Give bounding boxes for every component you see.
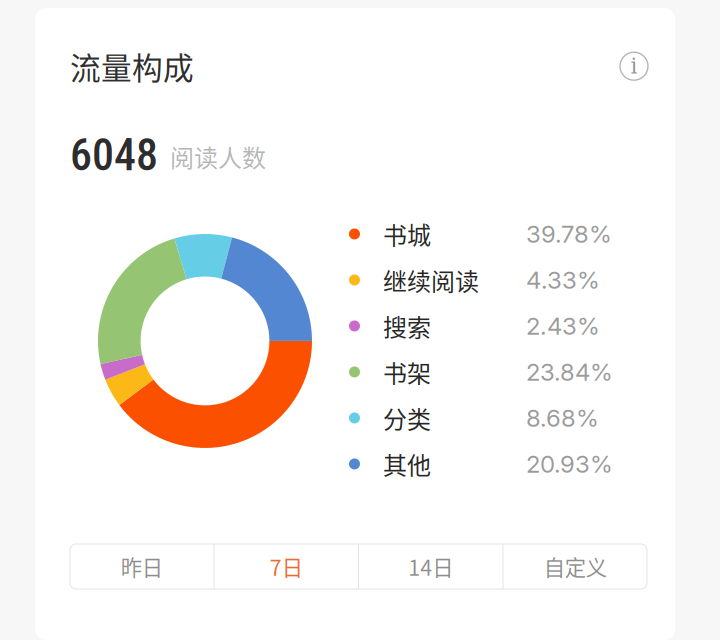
staticText: 分类 (383, 401, 431, 435)
staticText: 阅读人数 (170, 139, 266, 174)
staticText: 23.84% (526, 357, 613, 386)
staticText: 流量构成 (70, 44, 194, 88)
staticText: 自定义 (544, 551, 607, 582)
button[interactable]: 自定义 (503, 544, 647, 589)
staticText: 书架 (383, 355, 431, 389)
staticText: 20.93% (526, 449, 613, 478)
staticText: 7日 (270, 551, 303, 582)
button[interactable]: 14日 (359, 544, 502, 589)
staticText: 6048 (70, 129, 158, 181)
staticText: 2.43% (526, 311, 600, 340)
staticText: 14日 (408, 551, 453, 582)
staticText: 39.78% (526, 219, 612, 248)
staticText: 4.33% (526, 265, 600, 294)
staticText: i (630, 54, 637, 79)
staticText: 其他 (383, 447, 431, 481)
button[interactable]: 7日 (214, 544, 358, 589)
button[interactable]: Info (619, 51, 649, 81)
staticText: 8.68% (526, 403, 599, 432)
staticText: 书城 (383, 217, 431, 251)
staticText: 搜索 (383, 309, 431, 343)
staticText: 昨日 (121, 551, 163, 582)
button[interactable]: 昨日 (70, 544, 213, 589)
staticText: 继续阅读 (383, 263, 479, 297)
